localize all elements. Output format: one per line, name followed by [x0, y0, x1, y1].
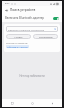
button[interactable]: Назад [2, 6, 10, 14]
staticText: Обновить список [7, 45, 28, 48]
staticText: Введите название устройства [8, 28, 54, 31]
staticText: Поиск устройств [10, 8, 36, 12]
staticText: Искать [14, 35, 23, 38]
other: Очистить [54, 28, 56, 30]
staticText: Нет пар поблизости [19, 74, 45, 78]
staticText: Список устройств [6, 41, 28, 44]
button[interactable]: Остановить [33, 34, 58, 39]
button[interactable]: Искать [6, 34, 31, 39]
button[interactable]: Назад [42, 99, 62, 107]
staticText: Остановить [39, 35, 53, 38]
staticText: Включить Bluetooth-адаптер [5, 16, 53, 20]
button[interactable]: Включить Bluetooth-адаптер [2, 14, 62, 22]
button[interactable]: Обновить список [6, 45, 29, 48]
button[interactable]: Введите название устройства [6, 26, 58, 32]
button[interactable]: Меню [2, 99, 22, 107]
button[interactable]: Главная [22, 99, 42, 107]
staticText: 9:41 [5, 2, 10, 5]
